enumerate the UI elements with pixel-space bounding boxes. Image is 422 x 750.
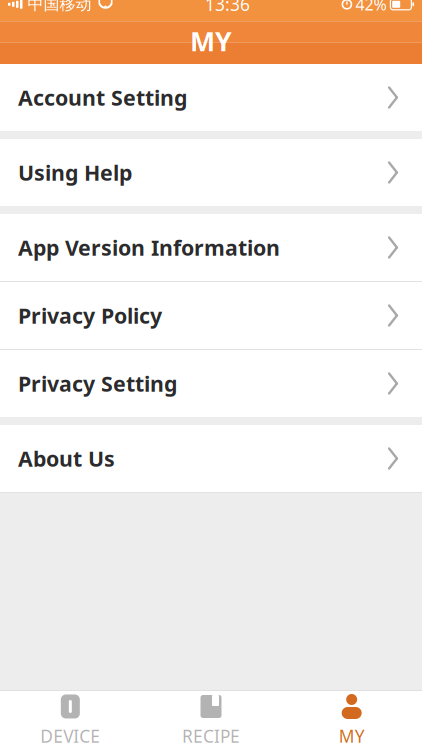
staticText: Privacy Policy [18, 301, 162, 330]
button[interactable]: Using Help [0, 139, 422, 206]
button[interactable]: About Us [0, 425, 422, 492]
staticText: App Version Information [18, 233, 280, 262]
staticText: Privacy Setting [18, 369, 177, 398]
button[interactable]: Privacy Policy [0, 282, 422, 349]
button[interactable]: Account Setting [0, 64, 422, 131]
staticText: 13:36 [205, 0, 250, 16]
staticText: DEVICE [40, 724, 100, 747]
staticText: MY [190, 23, 232, 59]
staticText: 中国移动 [27, 0, 91, 14]
button[interactable]: MY [281, 691, 422, 750]
staticText: RECIPE [182, 724, 240, 747]
staticText: Account Setting [18, 83, 187, 112]
staticText: About Us [18, 444, 115, 473]
staticText: MY [339, 724, 365, 747]
staticText: 42% [355, 0, 386, 15]
button[interactable]: RECIPE [141, 691, 281, 750]
button[interactable]: App Version Information [0, 214, 422, 281]
button[interactable]: Privacy Setting [0, 350, 422, 417]
button[interactable]: DEVICE [0, 691, 141, 750]
staticText: Using Help [18, 158, 132, 187]
